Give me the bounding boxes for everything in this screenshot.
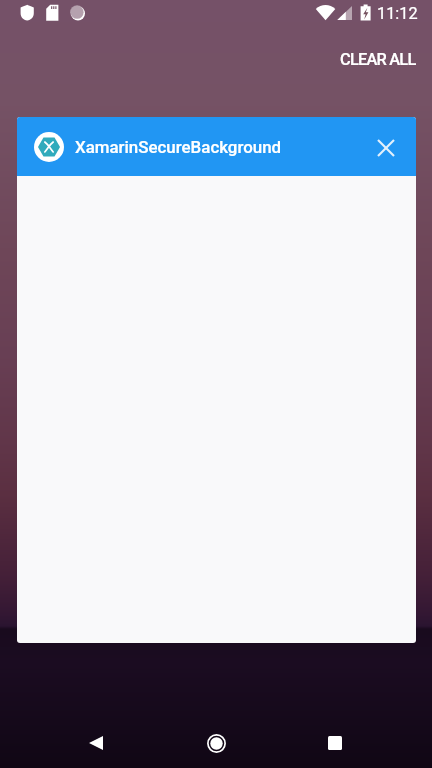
button[interactable]: CLEAR ALL xyxy=(324,44,432,75)
staticText: CLEAR ALL xyxy=(340,50,416,69)
staticText: 11:12 xyxy=(377,4,418,23)
button[interactable]: Home xyxy=(180,718,252,768)
button[interactable]: Back xyxy=(60,718,132,768)
staticText: XamarinSecureBackground xyxy=(75,137,282,157)
button[interactable]: Recent apps xyxy=(299,718,371,768)
button[interactable]: Close xyxy=(364,125,408,169)
button[interactable]: XamarinSecureBackground xyxy=(17,117,416,643)
